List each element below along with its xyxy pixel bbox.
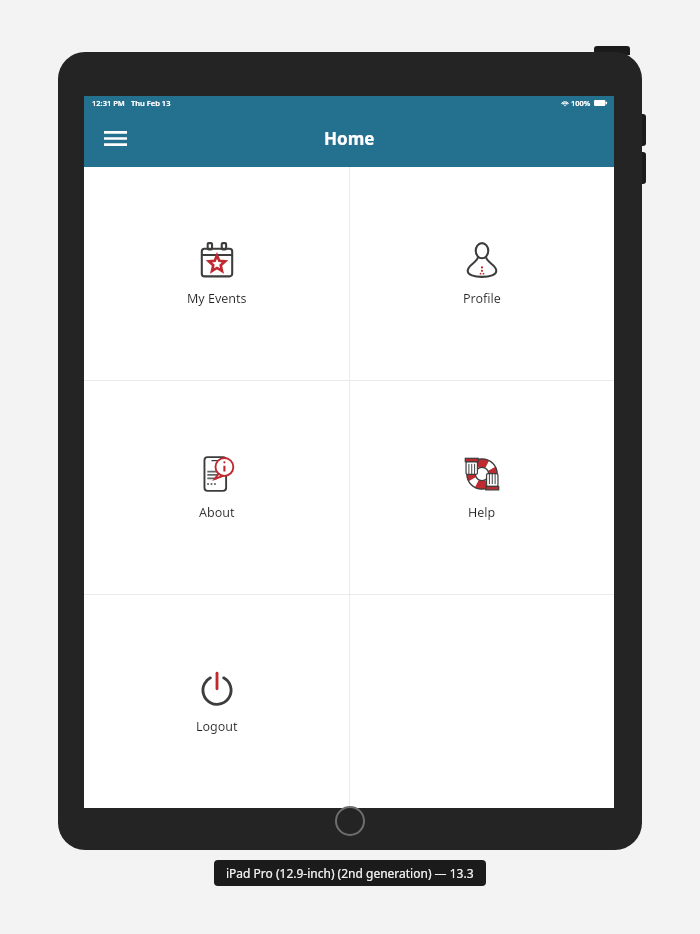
staticText: About (199, 504, 235, 521)
staticText: 100% (571, 98, 591, 108)
button[interactable]: Profile (349, 167, 614, 380)
button[interactable]: My Events (84, 167, 349, 380)
staticText: Help (468, 504, 496, 521)
staticText: Profile (463, 290, 501, 307)
staticText: iPad Pro (12.9-inch) (2nd generation) — … (226, 865, 474, 881)
button[interactable]: Open navigation menu (96, 119, 134, 157)
staticText: Thu Feb 13 (131, 98, 171, 108)
button[interactable]: Help (349, 381, 614, 594)
button[interactable]: Logout (84, 595, 349, 808)
staticText: 12:31 PM (92, 98, 125, 108)
staticText: My Events (187, 290, 247, 307)
staticText: Logout (196, 718, 238, 735)
staticText: Home (324, 127, 375, 150)
button[interactable]: About (84, 381, 349, 594)
